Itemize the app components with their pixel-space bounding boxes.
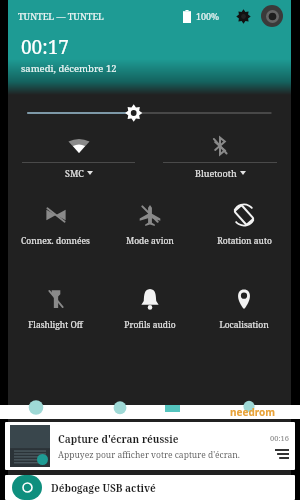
- button[interactable]: Connex. données: [8, 197, 103, 259]
- staticText: Appuyez pour afficher votre capture d'éc…: [58, 449, 240, 461]
- button[interactable]: SMC: [8, 131, 149, 187]
- button[interactable]: Profils audio: [103, 281, 197, 343]
- button[interactable]: Localisation: [197, 281, 291, 343]
- staticText: Bluetooth: [195, 167, 237, 179]
- staticText: samedi, décembre 12: [21, 62, 117, 75]
- staticText: 00:17: [21, 34, 69, 60]
- staticText: Mode avion: [126, 235, 174, 247]
- staticText: needrom: [230, 405, 276, 419]
- button[interactable]: Settings: [232, 5, 254, 27]
- button[interactable]: Flashlight Off: [8, 281, 103, 343]
- button[interactable]: Bluetooth: [149, 131, 291, 187]
- staticText: 00:16: [270, 433, 289, 443]
- staticText: Connex. données: [21, 235, 90, 247]
- button[interactable]: Capture d'écran réussie: [5, 422, 295, 470]
- staticText: 100%: [196, 10, 220, 22]
- staticText: Rotation auto: [217, 235, 272, 247]
- button[interactable]: Brightness: [8, 95, 291, 131]
- staticText: Flashlight Off: [28, 319, 83, 331]
- staticText: SMC: [65, 167, 84, 179]
- button[interactable]: Mode avion: [103, 197, 197, 259]
- staticText: TUNTEL — TUNTEL: [18, 10, 104, 22]
- button[interactable]: Débogage USB activé: [5, 475, 295, 500]
- staticText: Capture d'écran réussie: [58, 432, 179, 446]
- button[interactable]: User profile: [261, 5, 283, 27]
- staticText: Débogage USB activé: [51, 481, 156, 495]
- button[interactable]: Rotation auto: [197, 197, 291, 259]
- staticText: Profils audio: [124, 319, 176, 331]
- staticText: Localisation: [219, 319, 269, 331]
